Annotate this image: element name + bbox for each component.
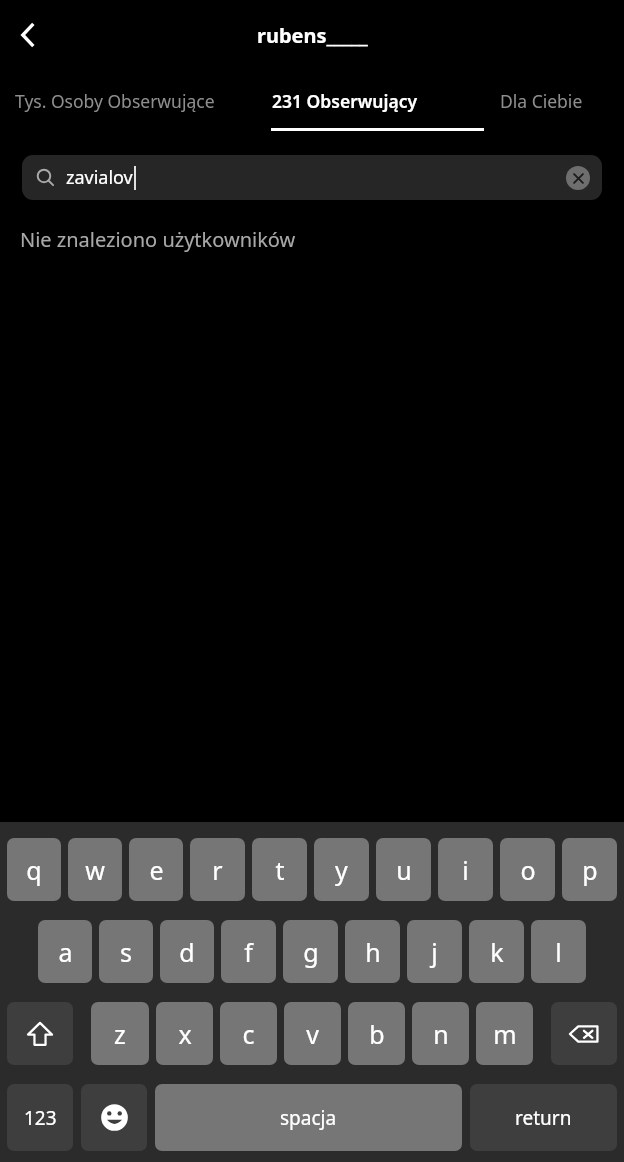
staticText: s <box>120 935 132 969</box>
staticText: spacja <box>280 1105 337 1131</box>
staticText: z <box>114 1017 126 1051</box>
staticText: c <box>242 1017 255 1051</box>
staticText: rubens_____ <box>257 22 368 49</box>
staticText: m <box>493 1017 517 1051</box>
button[interactable]: Back <box>0 7 56 63</box>
staticText: j <box>431 935 438 969</box>
staticText: q <box>26 853 42 887</box>
staticText: b <box>369 1017 385 1051</box>
button[interactable]: k <box>469 920 524 983</box>
staticText: x <box>178 1017 192 1051</box>
staticText: Nie znaleziono użytkowników <box>20 226 296 253</box>
button[interactable]: 123 <box>7 1084 73 1151</box>
button[interactable]: Clear <box>566 166 590 190</box>
button[interactable]: d <box>160 920 214 983</box>
staticText: v <box>306 1017 319 1051</box>
button[interactable]: c <box>220 1002 277 1065</box>
button[interactable]: Tys. Osoby Obserwujące <box>0 70 230 131</box>
button[interactable]: m <box>476 1002 533 1065</box>
button[interactable]: j <box>407 920 462 983</box>
staticText: k <box>490 935 504 969</box>
staticText: p <box>582 853 598 887</box>
staticText: zavialov <box>66 165 133 190</box>
button[interactable]: h <box>345 920 400 983</box>
staticText: w <box>85 853 105 887</box>
button[interactable]: u <box>376 838 431 901</box>
staticText: y <box>335 853 348 887</box>
staticText: i <box>462 853 469 887</box>
button[interactable]: e <box>129 838 183 901</box>
button[interactable]: q <box>7 838 61 901</box>
staticText: a <box>58 935 73 969</box>
staticText: 123 <box>24 1105 57 1131</box>
button[interactable]: Emoji <box>81 1084 147 1151</box>
button[interactable]: a <box>38 920 92 983</box>
staticText: g <box>303 935 319 969</box>
button[interactable]: o <box>500 838 555 901</box>
button[interactable]: Backspace <box>551 1002 617 1065</box>
staticText: 231 Obserwujący <box>272 89 418 113</box>
button[interactable]: g <box>283 920 338 983</box>
staticText: r <box>212 853 223 887</box>
staticText: Dla Ciebie <box>500 89 583 113</box>
staticText: u <box>396 853 412 887</box>
button[interactable]: x <box>156 1002 213 1065</box>
button[interactable]: s <box>99 920 153 983</box>
button[interactable]: b <box>348 1002 405 1065</box>
button[interactable]: w <box>68 838 122 901</box>
staticText: d <box>179 935 195 969</box>
staticText: f <box>244 935 253 969</box>
button[interactable]: n <box>412 1002 469 1065</box>
staticText: l <box>555 935 562 969</box>
button[interactable]: r <box>190 838 245 901</box>
button[interactable]: return <box>470 1084 617 1151</box>
staticText: h <box>365 935 381 969</box>
button[interactable]: 231 Obserwujący <box>230 70 459 131</box>
button[interactable]: zavialov <box>22 155 602 200</box>
button[interactable]: v <box>284 1002 341 1065</box>
button[interactable]: l <box>531 920 586 983</box>
button[interactable]: spacja <box>155 1084 462 1151</box>
staticText: e <box>149 853 164 887</box>
staticText: o <box>520 853 536 887</box>
staticText: n <box>433 1017 449 1051</box>
button[interactable]: p <box>562 838 617 901</box>
staticText: t <box>275 853 285 887</box>
button[interactable]: y <box>314 838 369 901</box>
button[interactable]: t <box>252 838 307 901</box>
button[interactable]: z <box>91 1002 149 1065</box>
button[interactable]: Dla Ciebie <box>459 70 624 131</box>
button[interactable]: Shift <box>7 1002 73 1065</box>
staticText: return <box>515 1105 572 1131</box>
staticText: Tys. Osoby Obserwujące <box>15 89 215 113</box>
button[interactable]: i <box>438 838 493 901</box>
button[interactable]: f <box>221 920 276 983</box>
